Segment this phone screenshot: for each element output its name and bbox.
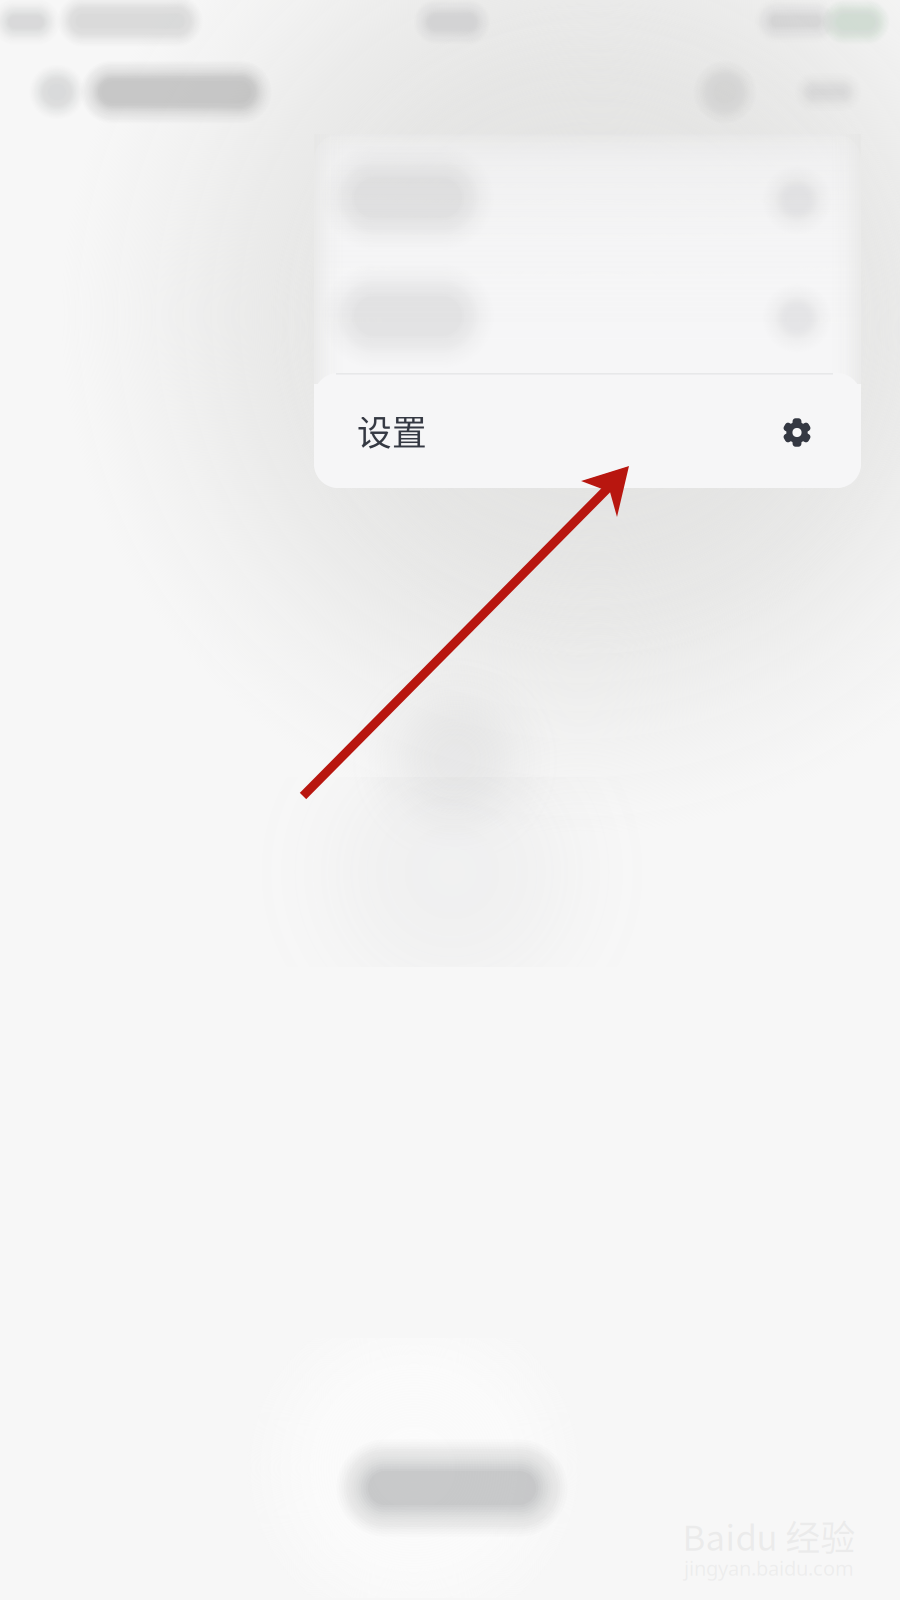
staticText: jingyan.baidu.com — [684, 1555, 854, 1581]
staticText: 设置 — [357, 405, 427, 456]
button[interactable]: 设置 — [314, 373, 861, 488]
staticText: Baidu 经验 — [682, 1511, 855, 1561]
